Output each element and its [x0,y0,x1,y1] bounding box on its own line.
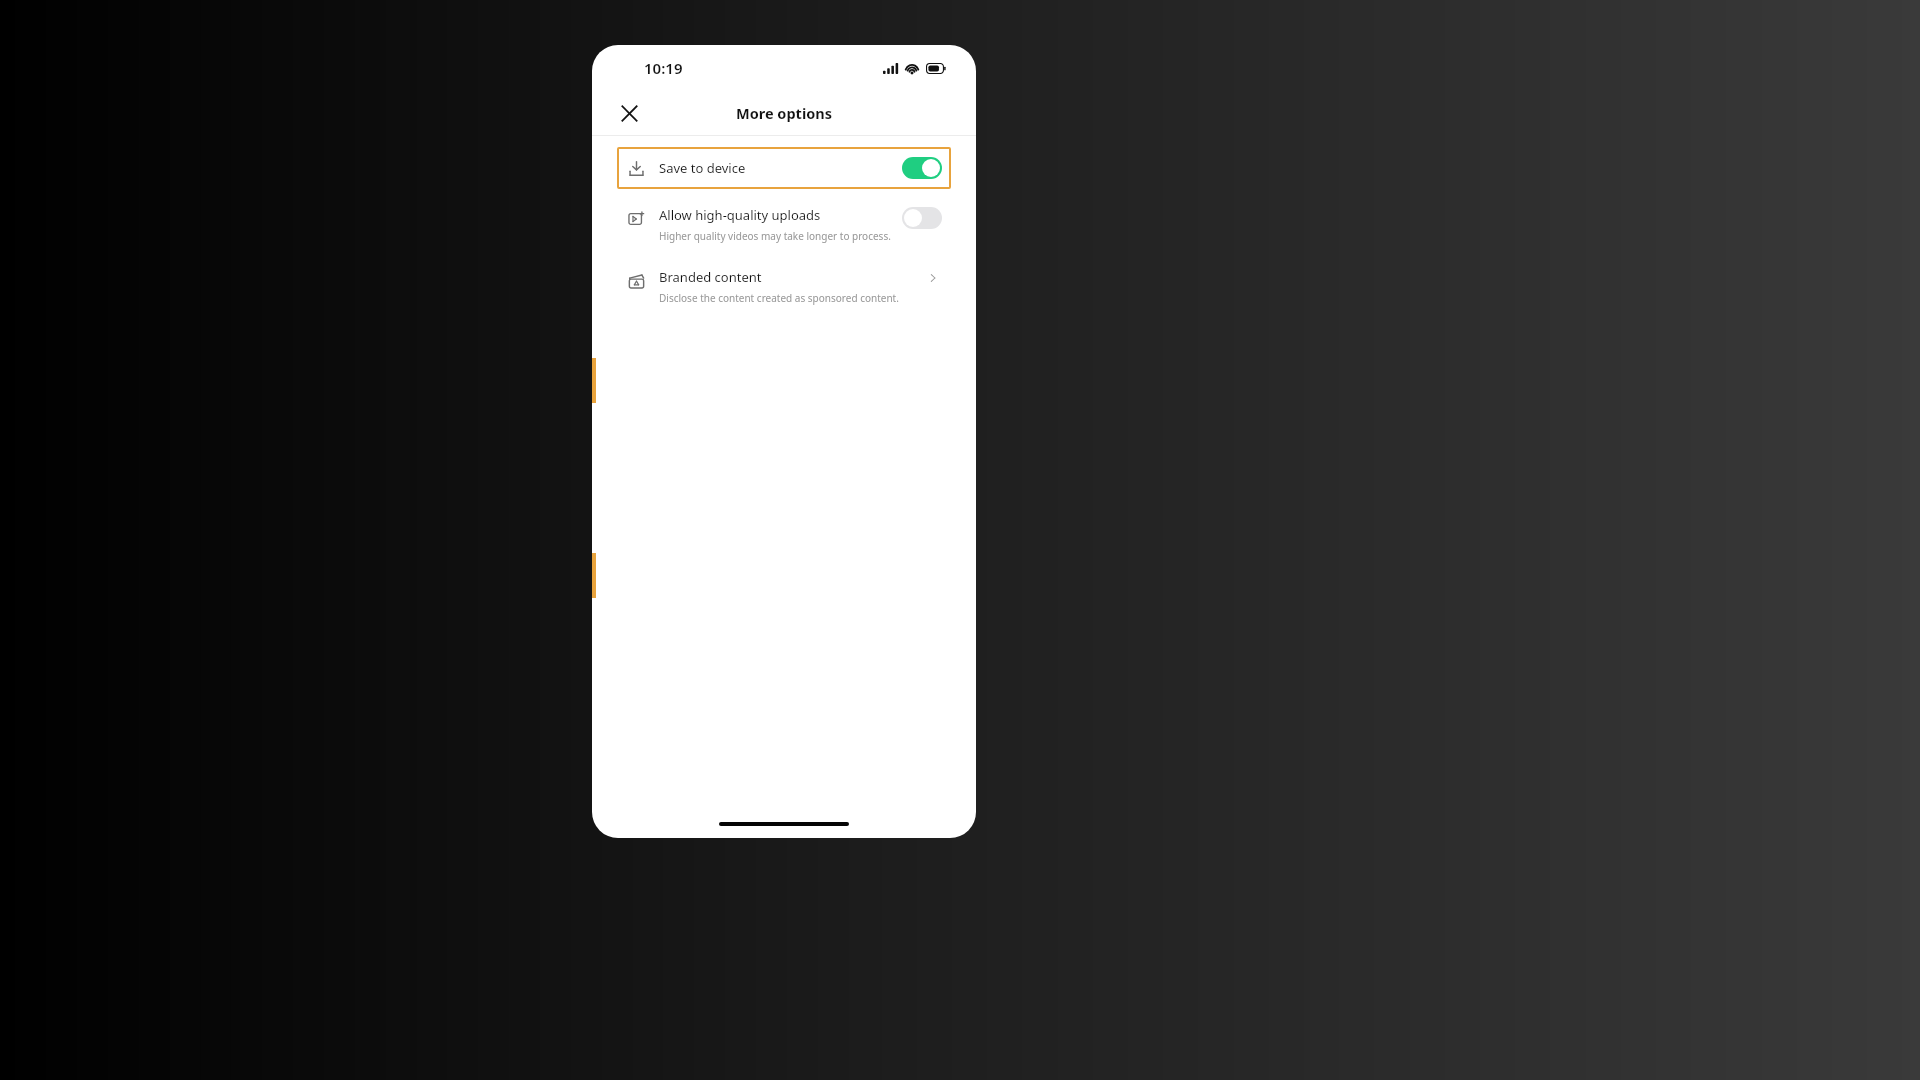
staticText: Allow high-quality uploads [659,206,821,224]
button[interactable]: Branded content [592,262,976,311]
button[interactable]: Toggle on [902,157,942,179]
staticText: Disclose the content created as sponsore… [659,291,899,305]
staticText: Higher quality videos may take longer to… [659,229,891,243]
staticText: More options [736,103,832,123]
button[interactable]: Close [614,98,644,128]
button[interactable]: Open branded content [924,269,942,287]
staticText: Save to device [659,159,746,177]
button[interactable]: Toggle off [902,207,942,229]
button[interactable]: Allow high-quality uploads [592,200,976,249]
button[interactable]: Save to device [617,147,951,189]
staticText: 10:19 [644,58,683,78]
staticText: Branded content [659,268,762,286]
